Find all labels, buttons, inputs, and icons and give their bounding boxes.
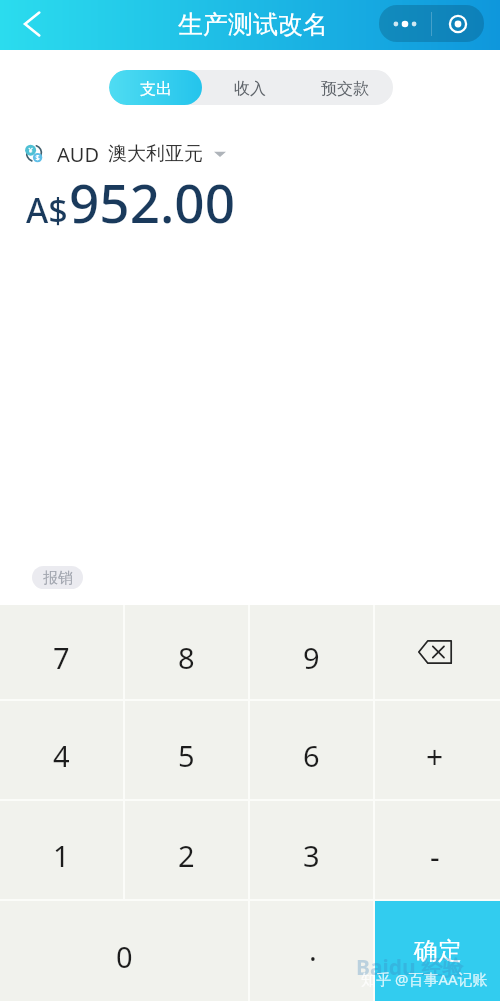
- button[interactable]: AUD: [0, 138, 500, 170]
- staticText: .: [309, 930, 317, 969]
- staticText: 报销: [43, 569, 73, 588]
- button[interactable]: 6: [250, 701, 373, 799]
- staticText: 2: [178, 836, 195, 875]
- button[interactable]: 8: [125, 605, 248, 699]
- button[interactable]: 7: [0, 605, 123, 699]
- button[interactable]: +: [375, 701, 500, 799]
- button[interactable]: 9: [250, 605, 373, 699]
- staticText: 7: [53, 638, 70, 677]
- button[interactable]: Backspace: [375, 605, 500, 699]
- staticText: 知乎 @百事AA记账: [361, 969, 488, 989]
- staticText: 3: [303, 836, 320, 875]
- staticText: 澳大利亚元: [108, 142, 203, 166]
- button[interactable]: 报销: [32, 566, 83, 589]
- button[interactable]: Back: [0, 0, 56, 50]
- button[interactable]: 2: [125, 801, 248, 899]
- button[interactable]: More options: [379, 5, 431, 42]
- button[interactable]: 3: [250, 801, 373, 899]
- staticText: 5: [178, 736, 195, 775]
- staticText: 预交款: [321, 79, 369, 99]
- staticText: 确定: [414, 936, 462, 966]
- staticText: 8: [178, 638, 195, 677]
- staticText: 支出: [140, 79, 172, 99]
- button[interactable]: .: [250, 901, 373, 1001]
- staticText: +: [426, 736, 444, 777]
- staticText: AUD: [57, 141, 99, 168]
- button[interactable]: Close: [432, 5, 484, 42]
- staticText: Baidu 经验: [356, 953, 464, 982]
- button[interactable]: 收入: [202, 70, 297, 105]
- staticText: 9: [303, 638, 320, 677]
- staticText: 0: [116, 937, 133, 976]
- staticText: -: [430, 836, 440, 877]
- button[interactable]: 预交款: [297, 70, 393, 105]
- button[interactable]: -: [375, 801, 500, 899]
- button[interactable]: 0: [0, 901, 248, 1001]
- staticText: 1: [53, 836, 70, 875]
- staticText: 生产测试改名: [178, 9, 328, 40]
- button[interactable]: 确定: [375, 901, 500, 1001]
- staticText: 952.00: [69, 166, 235, 224]
- button[interactable]: 5: [125, 701, 248, 799]
- staticText: A$: [26, 187, 68, 233]
- button[interactable]: 4: [0, 701, 123, 799]
- staticText: 4: [53, 736, 70, 775]
- button[interactable]: 支出: [109, 70, 202, 105]
- staticText: 6: [303, 736, 320, 775]
- button[interactable]: 1: [0, 801, 123, 899]
- staticText: 收入: [234, 79, 266, 99]
